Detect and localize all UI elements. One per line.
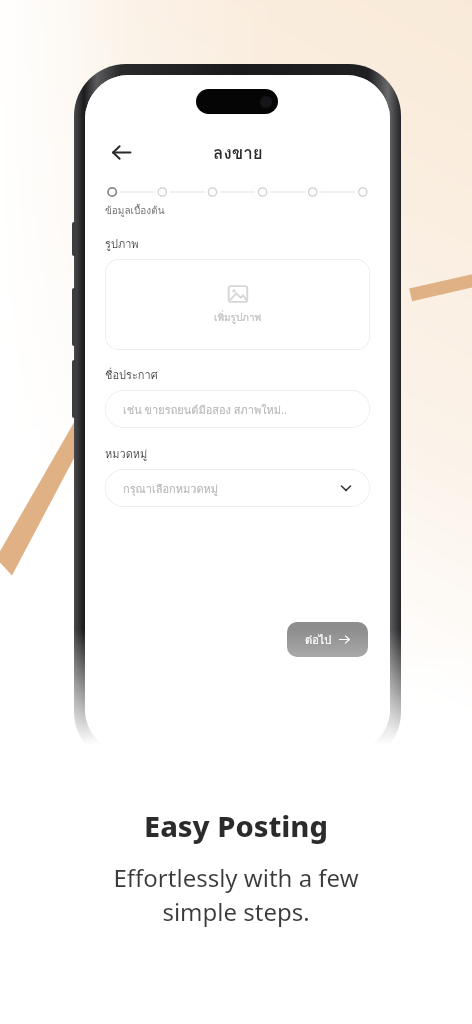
staticText: หมวดหมู่ [105, 445, 148, 462]
button[interactable]: ต่อไป [287, 622, 368, 657]
staticText: ลงขาย [213, 139, 263, 166]
staticText: ชื่อประกาศ [105, 366, 158, 383]
staticText: เช่น ขายรถยนต์มือสอง สภาพใหม่.. [123, 401, 287, 418]
staticText: ข้อมูลเบื้องต้น [105, 203, 165, 219]
staticText: รูปภาพ [105, 235, 139, 252]
button[interactable]: Add photo [105, 259, 370, 350]
staticText: Easy Posting [144, 806, 328, 845]
other: Expand [338, 480, 354, 496]
button[interactable]: เช่น ขายรถยนต์มือสอง สภาพใหม่.. [105, 390, 370, 428]
staticText: ต่อไป [305, 631, 332, 648]
button[interactable]: Back [105, 136, 137, 168]
staticText: กรุณาเลือกหมวดหมู่ [123, 480, 219, 497]
staticText: Effortlessly with a few simple steps. [0, 861, 472, 928]
button[interactable]: กรุณาเลือกหมวดหมู่ [105, 469, 370, 507]
staticText: เพิ่มรูปภาพ [214, 310, 262, 326]
